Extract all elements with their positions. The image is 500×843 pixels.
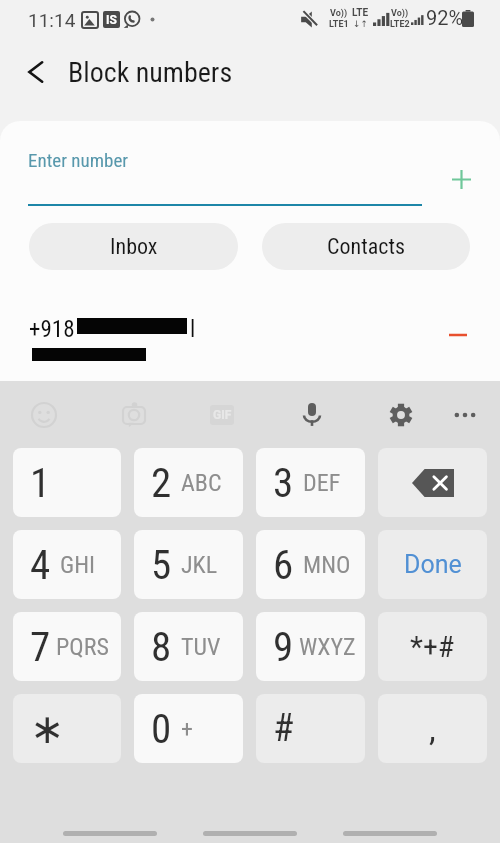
button[interactable]: Delete bbox=[378, 448, 487, 517]
staticText: 92% bbox=[426, 6, 464, 29]
staticText: 3 bbox=[273, 459, 294, 507]
button[interactable]: More options bbox=[435, 381, 495, 448]
button[interactable]: 2 bbox=[134, 448, 243, 517]
staticText: 5 bbox=[151, 541, 172, 589]
staticText: Enter number bbox=[28, 149, 129, 171]
staticText: 8 bbox=[151, 623, 172, 671]
staticText: 1 bbox=[30, 459, 51, 507]
staticText: DEF bbox=[303, 469, 341, 497]
staticText: LTE bbox=[352, 7, 369, 19]
button[interactable]: Voice input bbox=[282, 381, 342, 448]
button[interactable]: , bbox=[378, 694, 487, 763]
button[interactable]: Inbox bbox=[29, 223, 238, 270]
staticText: 2 bbox=[151, 459, 172, 507]
button[interactable]: # bbox=[256, 694, 365, 763]
button[interactable]: 7 bbox=[13, 612, 121, 681]
staticText: ∗ bbox=[30, 705, 65, 753]
staticText: 7 bbox=[30, 623, 51, 671]
button[interactable]: *+# bbox=[378, 612, 487, 681]
staticText: 4 bbox=[30, 541, 51, 589]
staticText: WXYZ bbox=[299, 633, 356, 661]
staticText: MNO bbox=[303, 551, 351, 579]
button[interactable]: 4 bbox=[13, 530, 121, 599]
staticText: # bbox=[273, 706, 294, 751]
staticText: Contacts bbox=[327, 234, 405, 260]
staticText: 6 bbox=[273, 541, 294, 589]
staticText: GHI bbox=[60, 551, 96, 579]
button[interactable]: Home bbox=[203, 831, 297, 836]
button[interactable]: Contacts bbox=[262, 223, 470, 270]
staticText: LTE2 bbox=[390, 19, 410, 30]
staticText: , bbox=[429, 709, 436, 749]
button[interactable]: Keyboard settings bbox=[371, 381, 431, 448]
staticText: 11:14 bbox=[28, 9, 76, 31]
button[interactable]: Recents bbox=[63, 831, 157, 836]
button[interactable]: Add number bbox=[438, 156, 484, 202]
button[interactable]: 8 bbox=[134, 612, 243, 681]
staticText: Done bbox=[404, 550, 462, 579]
staticText: *+# bbox=[410, 629, 455, 664]
other: Delete bbox=[412, 469, 454, 497]
button[interactable]: 6 bbox=[256, 530, 365, 599]
staticText: Vo)) bbox=[391, 8, 409, 19]
button[interactable]: +918 bbox=[0, 291, 500, 379]
staticText: IS bbox=[106, 13, 117, 27]
button[interactable]: Back bbox=[16, 52, 56, 92]
staticText: LTE1 bbox=[329, 19, 349, 30]
staticText: Block numbers bbox=[68, 56, 233, 89]
staticText: 0 bbox=[151, 705, 172, 753]
staticText: l bbox=[190, 316, 196, 343]
staticText: JKL bbox=[181, 551, 218, 579]
button[interactable]: 0 bbox=[134, 694, 243, 763]
button[interactable]: 3 bbox=[256, 448, 365, 517]
button[interactable]: 9 bbox=[256, 612, 365, 681]
staticText: Vo)) bbox=[330, 8, 348, 19]
staticText: GIF bbox=[213, 408, 232, 422]
button[interactable]: Done bbox=[378, 530, 487, 599]
staticText: + bbox=[181, 715, 193, 743]
staticText: PQRS bbox=[56, 633, 109, 661]
staticText: +918 bbox=[29, 316, 75, 343]
staticText: 9 bbox=[273, 623, 294, 671]
staticText: Inbox bbox=[110, 234, 158, 260]
staticText: ABC bbox=[181, 469, 222, 497]
button[interactable]: 1 bbox=[13, 448, 121, 517]
staticText: TUV bbox=[181, 633, 221, 661]
button[interactable]: Back bbox=[343, 831, 437, 836]
button[interactable]: 5 bbox=[134, 530, 243, 599]
button[interactable]: Unblock bbox=[428, 311, 488, 359]
staticText: ↓↑ bbox=[353, 19, 369, 29]
button[interactable]: ∗ bbox=[13, 694, 121, 763]
